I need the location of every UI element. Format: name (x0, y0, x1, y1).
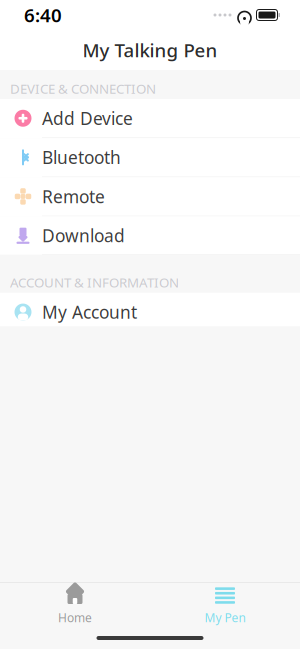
button[interactable]: Home (0, 583, 150, 627)
staticText: Add Device (42, 107, 133, 130)
button[interactable]: Add Device (0, 99, 300, 138)
staticText: Remote (42, 185, 105, 208)
staticText: My Talking Pen (82, 38, 217, 62)
button[interactable]: My Account (0, 293, 300, 332)
button[interactable]: Download (0, 216, 300, 255)
button[interactable]: My Pen (150, 583, 300, 627)
button[interactable]: Bluetooth (0, 138, 300, 177)
staticText: 6:40 (24, 3, 62, 27)
staticText: Download (42, 224, 125, 247)
button[interactable]: Remote (0, 177, 300, 216)
staticText: My Account (42, 300, 137, 323)
staticText: Bluetooth (42, 146, 121, 169)
staticText: My Pen (204, 609, 245, 625)
staticText: Home (58, 609, 92, 625)
staticText: ACCOUNT & INFORMATION (10, 273, 179, 291)
staticText: DEVICE & CONNECTION (10, 80, 156, 97)
